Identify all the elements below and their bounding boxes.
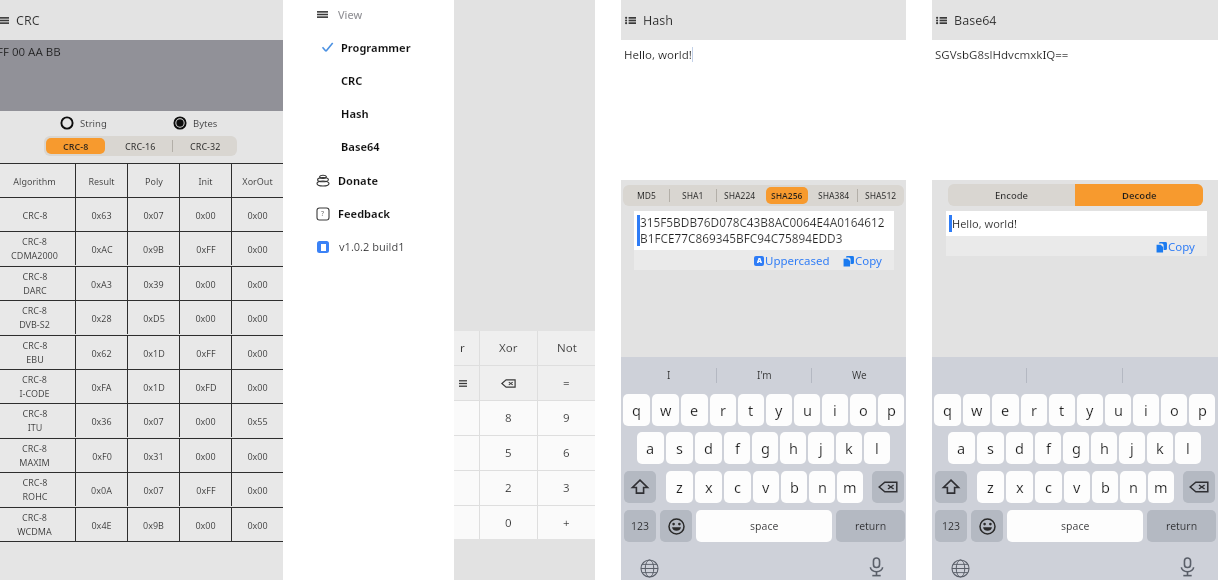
- staticText: SHA384: [818, 190, 850, 202]
- button[interactable]: j: [1119, 432, 1145, 464]
- staticText: 0xFF: [196, 347, 216, 359]
- button[interactable]: A: [754, 253, 830, 269]
- button[interactable]: o: [850, 394, 876, 426]
- staticText: Decode: [1122, 189, 1157, 202]
- staticText: 0x9B: [143, 243, 164, 255]
- button[interactable]: ?: [317, 197, 454, 230]
- button[interactable]: 123: [935, 510, 967, 542]
- button[interactable]: o: [1161, 394, 1187, 426]
- button[interactable]: Dictate: [1178, 557, 1197, 576]
- button[interactable]: f: [1035, 432, 1061, 464]
- staticText: Base64: [341, 139, 380, 154]
- button[interactable]: u: [794, 394, 820, 426]
- button[interactable]: k: [1147, 432, 1173, 464]
- button[interactable]: h: [1091, 432, 1117, 464]
- button[interactable]: SHA512: [860, 187, 902, 204]
- button[interactable]: p: [878, 394, 904, 426]
- button[interactable]: t: [1049, 394, 1075, 426]
- button[interactable]: q: [934, 394, 961, 426]
- button[interactable]: f: [724, 432, 750, 464]
- staticText: 0xAC: [91, 243, 113, 255]
- button[interactable]: k: [836, 432, 862, 464]
- button[interactable]: Encode: [948, 184, 1075, 206]
- button[interactable]: Hash: [322, 97, 454, 130]
- button[interactable]: i: [822, 394, 848, 426]
- button[interactable]: h: [780, 432, 806, 464]
- button[interactable]: g: [752, 432, 778, 464]
- button[interactable]: space: [696, 510, 832, 542]
- button[interactable]: d: [695, 432, 722, 464]
- button[interactable]: r: [710, 394, 736, 426]
- button[interactable]: x: [1006, 471, 1033, 503]
- button[interactable]: e: [992, 394, 1019, 426]
- button[interactable]: m: [837, 471, 863, 503]
- button[interactable]: MD5: [625, 187, 667, 204]
- button[interactable]: SHA1: [672, 187, 714, 204]
- button[interactable]: CRC: [322, 64, 454, 97]
- button[interactable]: y: [766, 394, 792, 426]
- staticText: CRC-16: [125, 140, 156, 152]
- button[interactable]: x: [695, 471, 722, 503]
- button[interactable]: 123: [624, 510, 656, 542]
- button[interactable]: c: [724, 471, 751, 503]
- button[interactable]: w: [963, 394, 990, 426]
- button[interactable]: SHA256: [766, 187, 808, 204]
- staticText: s: [987, 438, 994, 458]
- button[interactable]: Backspace: [872, 471, 904, 503]
- button[interactable]: e: [681, 394, 708, 426]
- button[interactable]: r: [1021, 394, 1047, 426]
- button[interactable]: CRC-8: [46, 138, 105, 154]
- button[interactable]: a: [948, 432, 975, 464]
- button[interactable]: Programmer: [322, 31, 454, 64]
- staticText: 0xFA: [91, 381, 112, 393]
- button[interactable]: a: [637, 432, 664, 464]
- button[interactable]: space: [1007, 510, 1143, 542]
- button[interactable]: s: [666, 432, 693, 464]
- button[interactable]: SHA384: [813, 187, 855, 204]
- button[interactable]: SHA224: [719, 187, 761, 204]
- button[interactable]: w: [652, 394, 679, 426]
- button[interactable]: y: [1077, 394, 1103, 426]
- button[interactable]: n: [809, 471, 835, 503]
- staticText: y: [1086, 400, 1094, 420]
- button[interactable]: t: [738, 394, 764, 426]
- button[interactable]: p: [1189, 394, 1215, 426]
- button[interactable]: v: [753, 471, 779, 503]
- button[interactable]: Backspace: [1183, 471, 1215, 503]
- button[interactable]: CRC-32: [175, 138, 235, 154]
- button[interactable]: Donate: [317, 164, 454, 197]
- button[interactable]: Shift: [935, 471, 967, 503]
- button[interactable]: Copy: [842, 253, 882, 269]
- button[interactable]: Emoji: [971, 510, 1003, 542]
- button[interactable]: u: [1105, 394, 1131, 426]
- button[interactable]: Dictate: [867, 557, 886, 576]
- button[interactable]: Shift: [624, 471, 656, 503]
- button[interactable]: j: [808, 432, 834, 464]
- button[interactable]: return: [836, 510, 905, 542]
- button[interactable]: Change keyboard: [640, 559, 659, 578]
- button[interactable]: b: [1092, 471, 1118, 503]
- button[interactable]: d: [1006, 432, 1033, 464]
- button[interactable]: Decode: [1075, 184, 1203, 206]
- button[interactable]: g: [1063, 432, 1089, 464]
- button[interactable]: Change keyboard: [951, 559, 970, 578]
- button[interactable]: Copy: [1155, 239, 1195, 255]
- button[interactable]: z: [977, 471, 1004, 503]
- button[interactable]: Emoji: [660, 510, 692, 542]
- staticText: String: [80, 117, 107, 130]
- button[interactable]: v: [1064, 471, 1090, 503]
- button[interactable]: i: [1133, 394, 1159, 426]
- button[interactable]: Base64: [322, 130, 454, 163]
- button[interactable]: c: [1035, 471, 1062, 503]
- button[interactable]: s: [977, 432, 1004, 464]
- button[interactable]: q: [623, 394, 650, 426]
- staticText: a: [957, 438, 966, 458]
- button[interactable]: l: [1175, 432, 1201, 464]
- button[interactable]: l: [864, 432, 890, 464]
- button[interactable]: b: [781, 471, 807, 503]
- button[interactable]: return: [1147, 510, 1216, 542]
- button[interactable]: z: [666, 471, 693, 503]
- button[interactable]: m: [1148, 471, 1174, 503]
- button[interactable]: n: [1120, 471, 1146, 503]
- button[interactable]: CRC-16: [110, 138, 170, 154]
